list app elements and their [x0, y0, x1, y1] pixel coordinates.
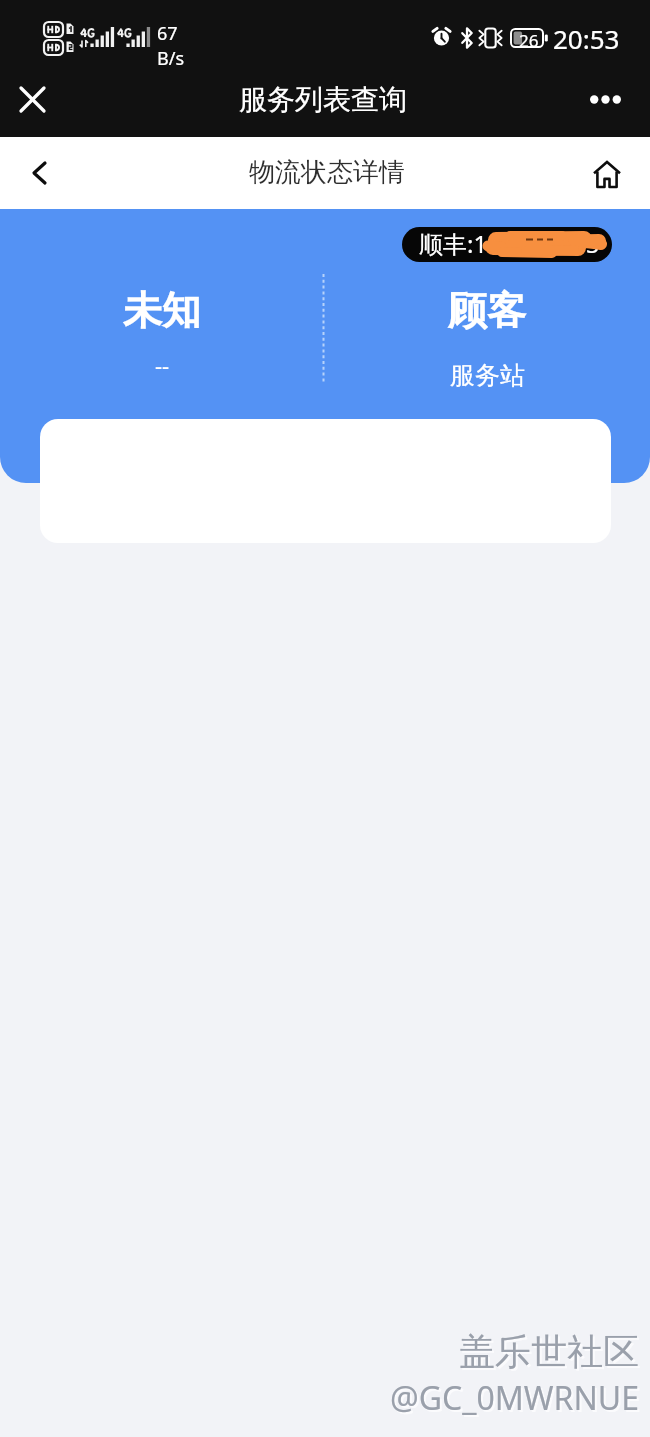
staticText: 67: [157, 21, 178, 46]
staticText: 20:53: [553, 21, 620, 56]
staticText: 服务列表查询: [239, 82, 407, 117]
button[interactable]: Back: [12, 146, 66, 200]
staticText: 物流状态详情: [249, 156, 405, 189]
staticText: 服务站: [450, 360, 525, 391]
staticText: 26: [519, 29, 539, 52]
staticText: 盖乐世社区: [459, 1329, 639, 1374]
staticText: @GC_0MWRNUE: [392, 1378, 641, 1422]
button[interactable]: Home: [580, 147, 634, 201]
staticText: @GC_0MWRNUE: [390, 1376, 639, 1420]
staticText: 盖乐世社区: [461, 1331, 641, 1376]
staticText: B/s: [157, 46, 185, 71]
button[interactable]: More options: [577, 71, 634, 128]
button[interactable]: 顺丰:19: [402, 227, 612, 262]
staticText: 顾客: [448, 286, 526, 335]
staticText: 顺丰:19: [419, 227, 501, 260]
staticText: --: [155, 350, 170, 380]
staticText: 35: [572, 227, 600, 260]
button[interactable]: Logistics detail card: [40, 419, 611, 543]
staticText: 未知: [123, 286, 201, 335]
button[interactable]: Close: [4, 71, 61, 128]
